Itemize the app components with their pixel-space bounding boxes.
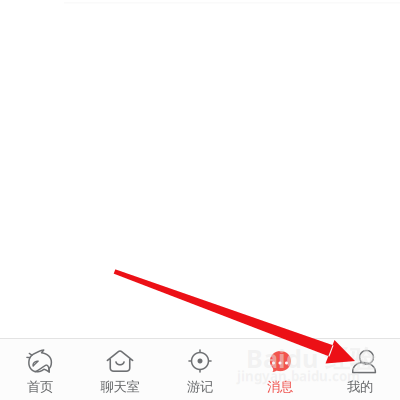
staticText: 首页 bbox=[27, 379, 53, 395]
staticText: Baidu 经验 bbox=[246, 341, 375, 375]
button[interactable]: 我的 bbox=[320, 339, 400, 400]
staticText: 消息 bbox=[267, 379, 293, 395]
button[interactable]: 聊天室 bbox=[80, 339, 160, 400]
button[interactable]: 游记 bbox=[160, 339, 240, 400]
staticText: jingyan.baidu.com bbox=[237, 367, 360, 385]
staticText: 聊天室 bbox=[100, 379, 139, 395]
button[interactable]: 消息 bbox=[240, 339, 320, 400]
button[interactable]: 首页 bbox=[0, 339, 80, 400]
staticText: 我的 bbox=[347, 379, 373, 395]
staticText: 游记 bbox=[187, 379, 213, 395]
